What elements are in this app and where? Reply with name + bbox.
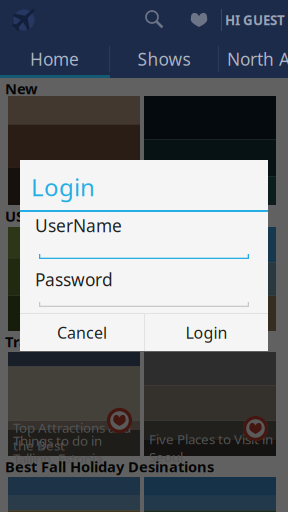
staticText: Top Attractions and the Best bbox=[13, 419, 131, 454]
staticText: Things to do in Tallinn, Estonia bbox=[13, 432, 102, 467]
button[interactable]: Home bbox=[0, 40, 109, 78]
staticText: Login bbox=[185, 322, 227, 343]
button[interactable]: Favourite bbox=[106, 290, 133, 317]
staticText: Login bbox=[31, 171, 95, 203]
staticText: USA bbox=[5, 206, 34, 226]
button[interactable]: Favourite bbox=[242, 415, 269, 442]
button[interactable]: Favourite bbox=[242, 290, 269, 317]
button[interactable]: Favourites bbox=[177, 0, 221, 40]
staticText: North Am bbox=[227, 47, 288, 70]
button[interactable]: HI GUEST bbox=[222, 0, 288, 40]
button[interactable]: Login bbox=[145, 314, 268, 351]
button[interactable]: Favourite bbox=[106, 407, 133, 434]
staticText: New bbox=[5, 79, 38, 98]
button[interactable]: Five Places to Visit in Seoul bbox=[144, 352, 276, 456]
staticText: Five Places to Visit in Seoul bbox=[149, 430, 273, 466]
staticText: Cancel bbox=[57, 322, 107, 343]
button[interactable] bbox=[144, 227, 276, 331]
button[interactable]: Cancel bbox=[20, 314, 144, 351]
button[interactable]: Home bbox=[0, 0, 48, 40]
staticText: Travel bbox=[5, 332, 49, 351]
button[interactable] bbox=[8, 477, 140, 512]
staticText: Best Fall Holiday Desinations bbox=[5, 457, 214, 476]
button[interactable] bbox=[8, 96, 140, 205]
staticText: UserName bbox=[35, 214, 122, 237]
button[interactable]: Top Attractions and the Best bbox=[8, 352, 140, 456]
button[interactable] bbox=[8, 227, 140, 331]
button[interactable]: Shows bbox=[110, 40, 218, 78]
staticText: HI GUEST bbox=[225, 11, 285, 29]
staticText: Home bbox=[30, 47, 79, 70]
staticText: Shows bbox=[137, 47, 190, 70]
button[interactable]: North Am bbox=[219, 40, 288, 78]
staticText: Password bbox=[35, 268, 113, 291]
button[interactable] bbox=[144, 477, 276, 512]
button[interactable]: Search bbox=[133, 0, 177, 40]
button[interactable] bbox=[144, 96, 276, 205]
